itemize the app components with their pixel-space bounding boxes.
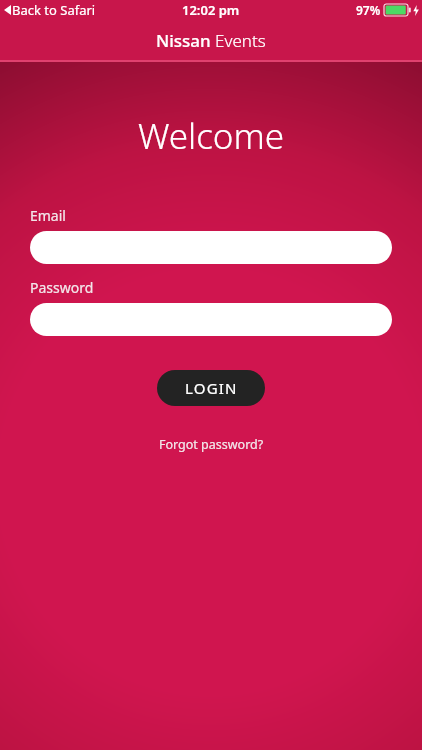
staticText: 12:02 pm bbox=[182, 1, 240, 19]
button[interactable]: Forgot password? bbox=[151, 434, 272, 455]
button[interactable]: LOGIN bbox=[157, 370, 265, 406]
button[interactable]: Email input field bbox=[30, 231, 392, 264]
staticText: Nissan Events bbox=[156, 29, 266, 52]
staticText: LOGIN bbox=[185, 378, 238, 398]
button[interactable]: Password input field bbox=[30, 303, 392, 336]
staticText: Password bbox=[30, 278, 94, 297]
staticText: Welcome bbox=[0, 112, 422, 160]
staticText: Back to Safari bbox=[12, 1, 96, 19]
button[interactable]: Back to Safari bbox=[4, 1, 96, 19]
staticText: Forgot password? bbox=[159, 436, 264, 453]
staticText: 97% bbox=[356, 2, 381, 18]
staticText: Email bbox=[30, 206, 66, 225]
